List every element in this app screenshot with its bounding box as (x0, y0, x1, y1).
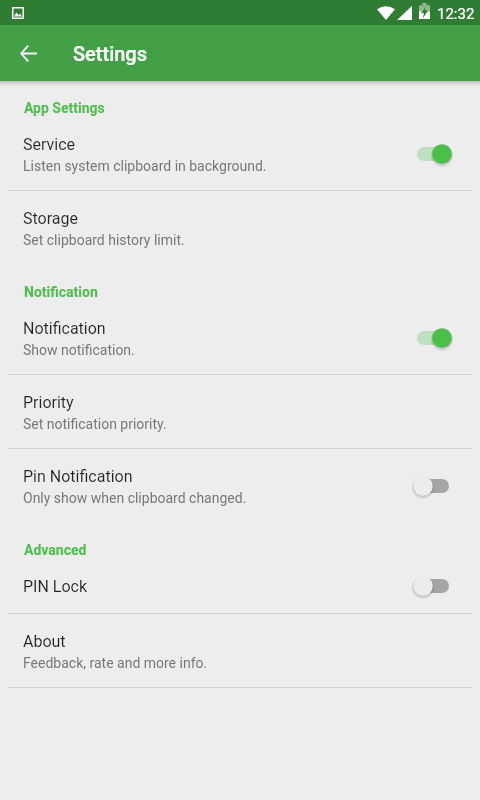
staticText: About (23, 632, 66, 651)
button[interactable]: PIN Lock (0, 559, 480, 614)
staticText: Set clipboard history limit. (23, 232, 185, 248)
button[interactable]: Pin Notification (0, 449, 480, 523)
button[interactable]: Notification (0, 301, 480, 375)
staticText: Only show when clipboard changed. (23, 490, 247, 506)
button[interactable]: Service (0, 117, 480, 191)
button[interactable]: Storage (0, 191, 480, 265)
staticText: Settings (73, 42, 148, 65)
staticText: Pin Notification (23, 467, 133, 486)
staticText: Feedback, rate and more info. (23, 655, 208, 671)
staticText: PIN Lock (23, 577, 88, 596)
staticText: App Settings (24, 100, 105, 116)
staticText: Listen system clipboard in background. (23, 158, 267, 174)
staticText: Advanced (24, 542, 87, 558)
staticText: Notification (24, 284, 98, 300)
button[interactable]: Back (4, 29, 52, 77)
staticText: Set notification priority. (23, 416, 167, 432)
button[interactable]: About (0, 614, 480, 688)
staticText: Notification (23, 319, 106, 338)
staticText: Storage (23, 209, 78, 228)
staticText: Show notification. (23, 342, 135, 358)
staticText: Priority (23, 393, 74, 412)
staticText: 12:32 (437, 5, 475, 23)
button[interactable]: Priority (0, 375, 480, 449)
staticText: Service (23, 135, 76, 154)
